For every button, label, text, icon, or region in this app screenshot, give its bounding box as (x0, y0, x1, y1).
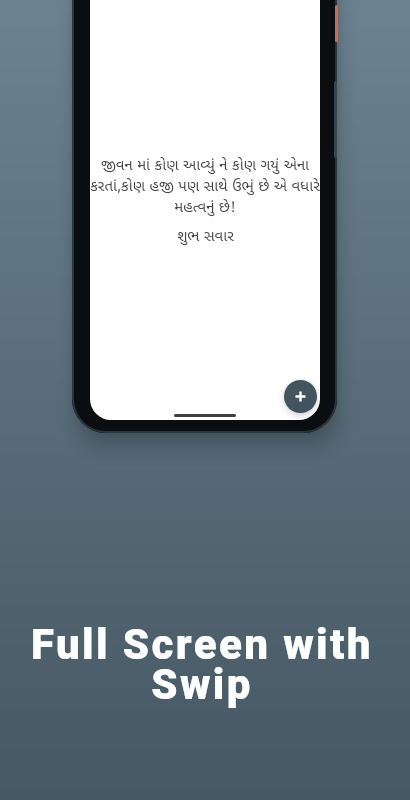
button[interactable] (284, 380, 317, 413)
staticText: શુભ સવાર (177, 225, 234, 245)
staticText: Full Screen with Swip (31, 620, 373, 709)
staticText: જીવન માં કોણ આવ્યું ને કોણ ગયું એના કરતા… (90, 154, 320, 217)
